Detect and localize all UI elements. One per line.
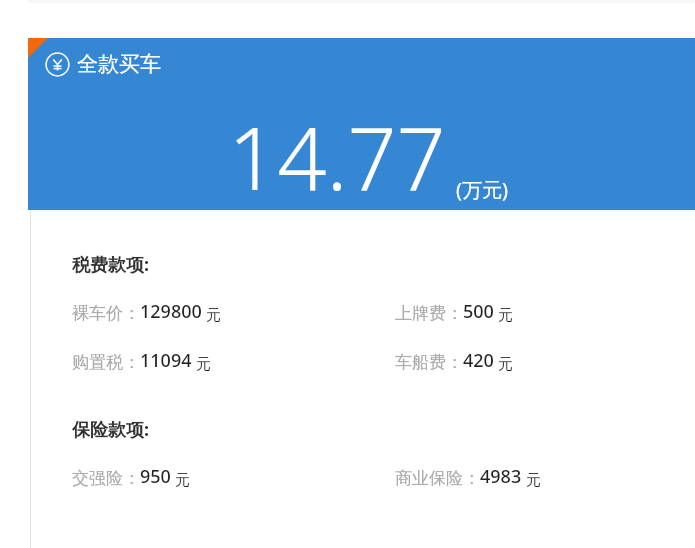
staticText: 裸车价： xyxy=(72,303,140,324)
staticText: 购置税： xyxy=(72,352,140,373)
staticText: (万元) xyxy=(456,176,508,203)
staticText: 保险款项: xyxy=(72,417,150,442)
staticText: 车船费： xyxy=(395,352,463,373)
staticText: 元 xyxy=(171,469,190,489)
staticText: 元 xyxy=(494,353,513,373)
staticText: 500 xyxy=(463,299,494,324)
staticText: 元 xyxy=(494,304,513,324)
staticText: 商业保险： xyxy=(395,468,480,489)
staticText: 950 xyxy=(140,464,171,489)
staticText: 全款买车 xyxy=(77,51,161,77)
staticText: 元 xyxy=(202,304,221,324)
staticText: 4983 xyxy=(480,464,522,489)
staticText: 420 xyxy=(463,348,494,373)
staticText: 元 xyxy=(192,353,211,373)
staticText: 14.77 xyxy=(228,98,446,215)
staticText: 上牌费： xyxy=(395,303,463,324)
staticText: 元 xyxy=(522,469,541,489)
staticText: 129800 xyxy=(140,299,202,324)
staticText: 税费款项: xyxy=(72,252,150,277)
staticText: 11094 xyxy=(140,348,192,373)
other: 全款买车 xyxy=(45,51,161,77)
button[interactable]: 全款买车 xyxy=(28,38,695,210)
staticText: 交强险： xyxy=(72,468,140,489)
